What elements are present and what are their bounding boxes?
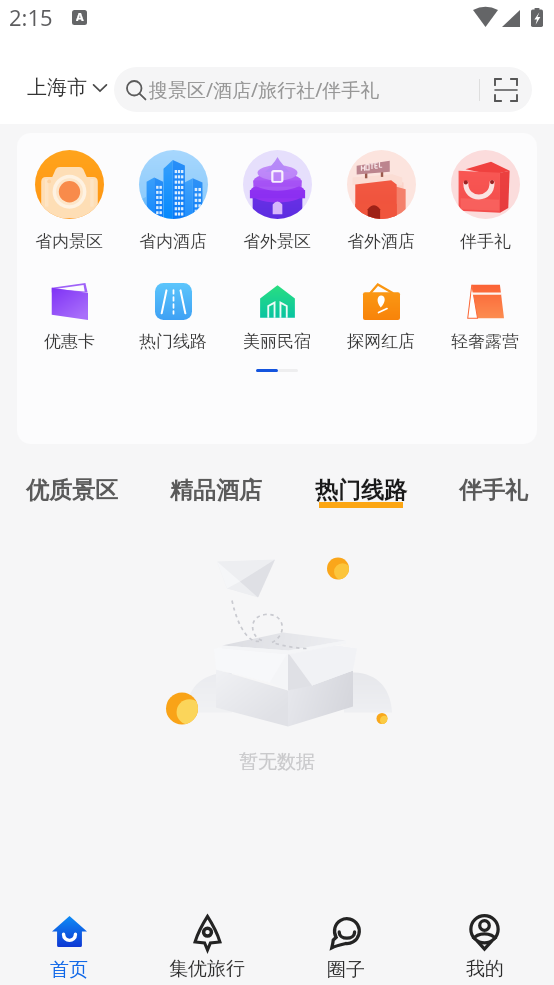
staticText: 我的 bbox=[466, 957, 504, 981]
staticText: 首页 bbox=[50, 958, 88, 982]
staticText: 伴手礼 bbox=[459, 476, 528, 505]
staticText: 圈子 bbox=[327, 958, 365, 982]
button[interactable]: 集优旅行 bbox=[138, 890, 276, 985]
staticText: 集优旅行 bbox=[169, 957, 245, 981]
staticText: 省内景区 bbox=[35, 231, 103, 252]
button[interactable]: 优惠卡 bbox=[17, 271, 121, 352]
staticText: 精品酒店 bbox=[170, 476, 262, 505]
staticText: A bbox=[76, 10, 84, 24]
button[interactable]: 热门线路 bbox=[315, 476, 407, 511]
button[interactable]: 上海市 bbox=[27, 75, 107, 100]
button[interactable]: 圈子 bbox=[276, 890, 415, 985]
staticText: 2:15 bbox=[9, 2, 53, 32]
button[interactable]: 优质景区 bbox=[26, 476, 118, 511]
staticText: 伴手礼 bbox=[460, 231, 511, 252]
staticText: 美丽民宿 bbox=[243, 331, 311, 352]
button[interactable]: Scan QR code bbox=[480, 67, 532, 112]
button[interactable]: 轻奢露营 bbox=[433, 271, 537, 352]
button[interactable]: 精品酒店 bbox=[170, 476, 262, 511]
staticText: 探网红店 bbox=[347, 331, 415, 352]
staticText: 省外酒店 bbox=[347, 231, 415, 252]
staticText: 热门线路 bbox=[315, 476, 407, 505]
button[interactable]: 首页 bbox=[0, 890, 138, 985]
staticText: 暂无数据 bbox=[239, 750, 315, 774]
button[interactable]: 探网红店 bbox=[329, 271, 433, 352]
button[interactable]: 我的 bbox=[415, 890, 554, 985]
staticText: 上海市 bbox=[27, 75, 87, 100]
staticText: 省内酒店 bbox=[139, 231, 207, 252]
button[interactable]: 搜景区/酒店/旅行社/伴手礼 bbox=[114, 67, 532, 112]
button[interactable]: 伴手礼 bbox=[433, 133, 537, 252]
staticText: 搜景区/酒店/旅行社/伴手礼 bbox=[149, 77, 380, 103]
button[interactable]: 省内景区 bbox=[17, 133, 121, 252]
button[interactable]: 省外景区 bbox=[225, 133, 329, 252]
button[interactable]: 热门线路 bbox=[121, 271, 225, 352]
button[interactable]: 省外酒店 bbox=[329, 133, 433, 252]
button[interactable]: 美丽民宿 bbox=[225, 271, 329, 352]
button[interactable]: 伴手礼 bbox=[459, 476, 528, 511]
staticText: 热门线路 bbox=[139, 331, 207, 352]
staticText: 轻奢露营 bbox=[451, 331, 519, 352]
staticText: 优质景区 bbox=[26, 476, 118, 505]
staticText: 优惠卡 bbox=[44, 331, 95, 352]
staticText: 省外景区 bbox=[243, 231, 311, 252]
button[interactable]: 省内酒店 bbox=[121, 133, 225, 252]
